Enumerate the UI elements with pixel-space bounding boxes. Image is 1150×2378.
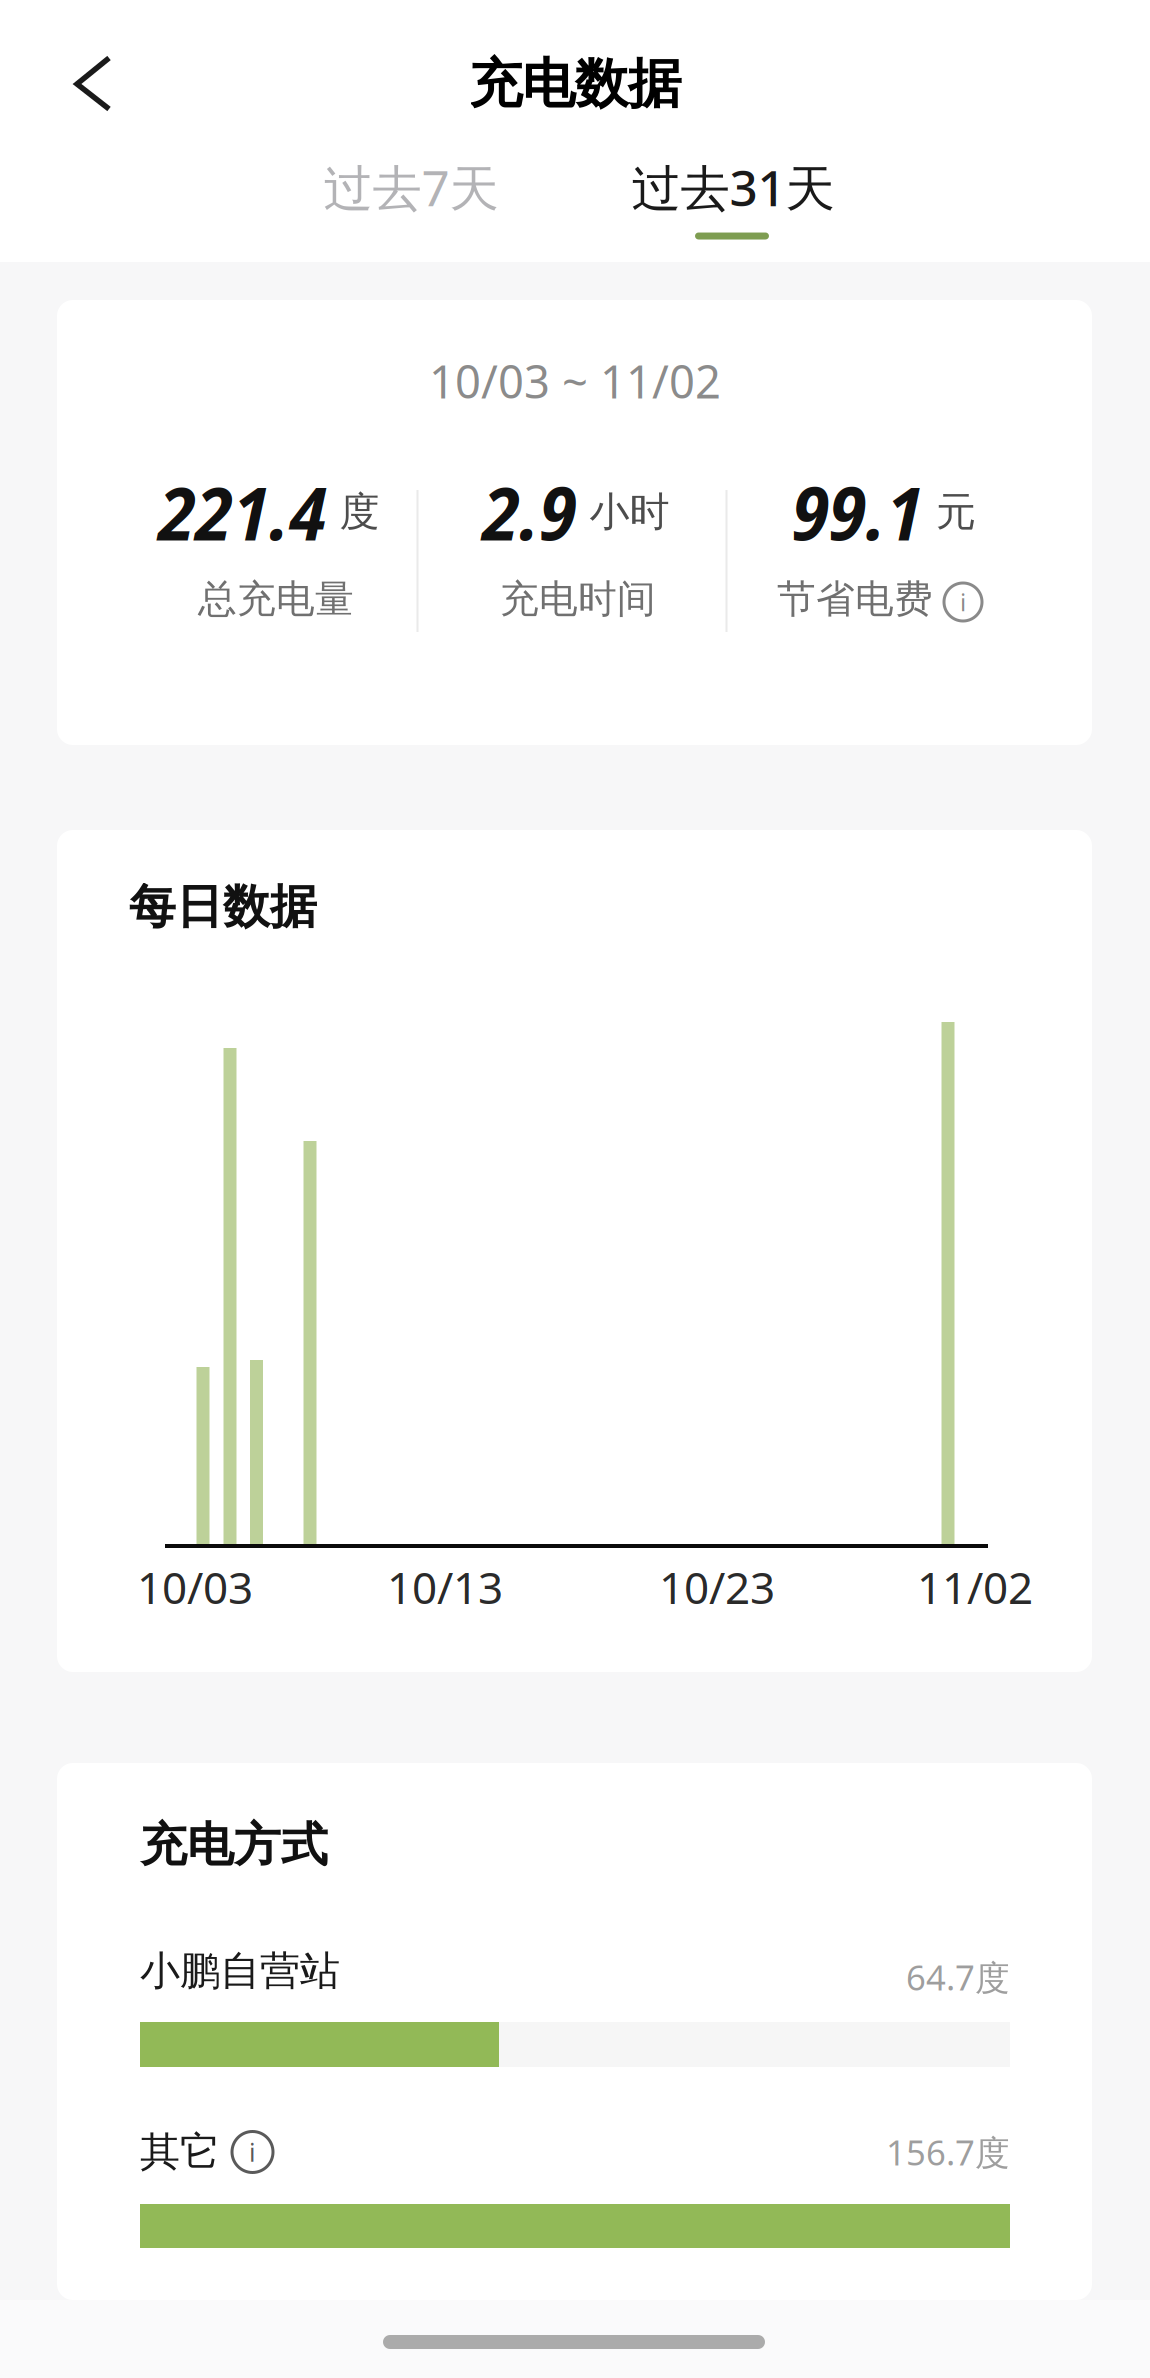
staticText: 过去7天 bbox=[323, 154, 498, 220]
staticText: 节省电费 bbox=[777, 575, 933, 623]
staticText: 156.7度 bbox=[886, 2129, 1010, 2175]
staticText: 其它 bbox=[140, 2127, 220, 2176]
staticText: 10/13 bbox=[387, 1558, 503, 1616]
staticText: 2.9 bbox=[482, 462, 576, 562]
staticText: 过去31天 bbox=[631, 154, 834, 220]
staticText: 充电时间 bbox=[500, 575, 656, 623]
staticText: 10/03 bbox=[137, 1558, 253, 1616]
staticText: 充电数据 bbox=[469, 51, 681, 117]
staticText: 221.4 bbox=[158, 462, 326, 562]
staticText: 10/23 bbox=[659, 1558, 775, 1616]
staticText: 11/02 bbox=[917, 1558, 1033, 1616]
staticText: 度 bbox=[339, 487, 379, 536]
staticText: 小鹏自营站 bbox=[140, 1946, 340, 1995]
staticText: 总充电量 bbox=[198, 575, 354, 623]
staticText: 充电方式 bbox=[140, 1816, 328, 1874]
staticText: 每日数据 bbox=[129, 878, 317, 936]
button[interactable]: 过去31天 bbox=[593, 142, 873, 232]
button[interactable]: 过去7天 bbox=[281, 142, 541, 232]
staticText: i bbox=[249, 2135, 256, 2169]
button[interactable]: Back bbox=[53, 39, 143, 129]
staticText: 99.1 bbox=[792, 462, 923, 562]
staticText: 10/03 ~ 11/02 bbox=[429, 351, 721, 411]
button[interactable]: 其它说明 bbox=[220, 2129, 275, 2174]
staticText: 小时 bbox=[589, 487, 669, 536]
staticText: 元 bbox=[936, 487, 976, 536]
staticText: i bbox=[960, 586, 966, 618]
staticText: 64.7度 bbox=[906, 1954, 1010, 2000]
button[interactable]: 节省电费说明 bbox=[942, 581, 984, 623]
